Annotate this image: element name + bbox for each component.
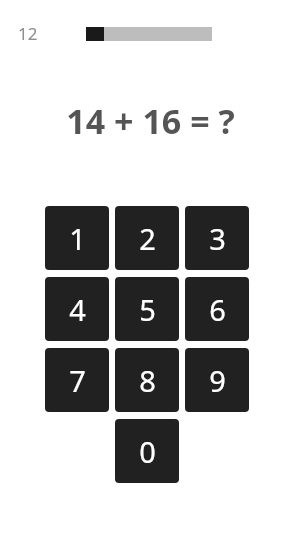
staticText: 8 (139, 361, 156, 400)
staticText: 5 (139, 290, 156, 329)
staticText: 14 + 16 = ? (66, 98, 235, 144)
staticText: 12 (18, 22, 38, 45)
staticText: 1 (69, 219, 86, 258)
other: Time remaining (86, 27, 212, 41)
staticText: 4 (69, 290, 86, 329)
staticText: 0 (139, 432, 156, 471)
button[interactable]: 1 (45, 206, 109, 270)
button[interactable]: 7 (45, 348, 109, 412)
staticText: 2 (139, 219, 156, 258)
staticText: 7 (69, 361, 86, 400)
button[interactable]: 0 (115, 419, 179, 483)
button[interactable]: 2 (115, 206, 179, 270)
staticText: 3 (209, 219, 226, 258)
button[interactable]: 5 (115, 277, 179, 341)
button[interactable]: 9 (185, 348, 249, 412)
staticText: 6 (209, 290, 226, 329)
button[interactable]: 6 (185, 277, 249, 341)
button[interactable]: 3 (185, 206, 249, 270)
button[interactable]: 4 (45, 277, 109, 341)
staticText: 9 (209, 361, 226, 400)
button[interactable]: 8 (115, 348, 179, 412)
